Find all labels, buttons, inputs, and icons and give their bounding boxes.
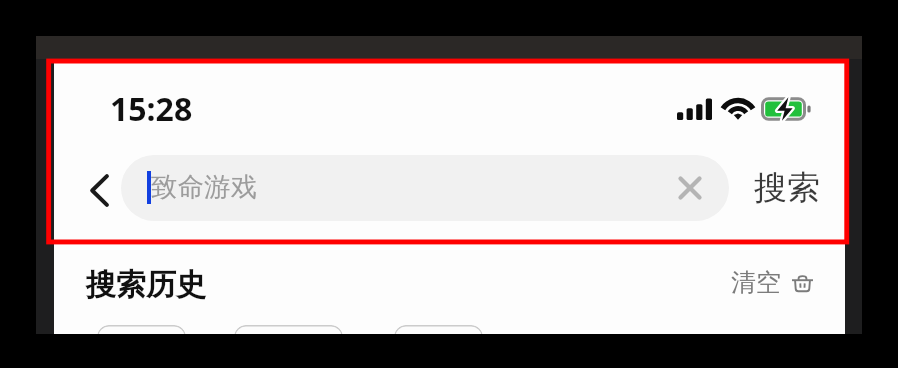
staticText: 清空 — [731, 267, 781, 298]
button[interactable]: 搜索 — [743, 155, 831, 221]
button[interactable]: Clear text — [665, 164, 715, 212]
button[interactable] — [234, 325, 343, 334]
button[interactable] — [394, 325, 483, 334]
button[interactable] — [97, 325, 186, 334]
staticText: 致命游戏 — [151, 170, 257, 203]
staticText: 15:28 — [110, 87, 193, 131]
button[interactable]: 致命游戏 — [121, 155, 729, 221]
button[interactable]: 清空 — [731, 267, 813, 298]
staticText: 搜索 — [754, 167, 820, 209]
staticText: 搜索历史 — [86, 266, 206, 304]
button[interactable]: Back — [70, 156, 128, 224]
